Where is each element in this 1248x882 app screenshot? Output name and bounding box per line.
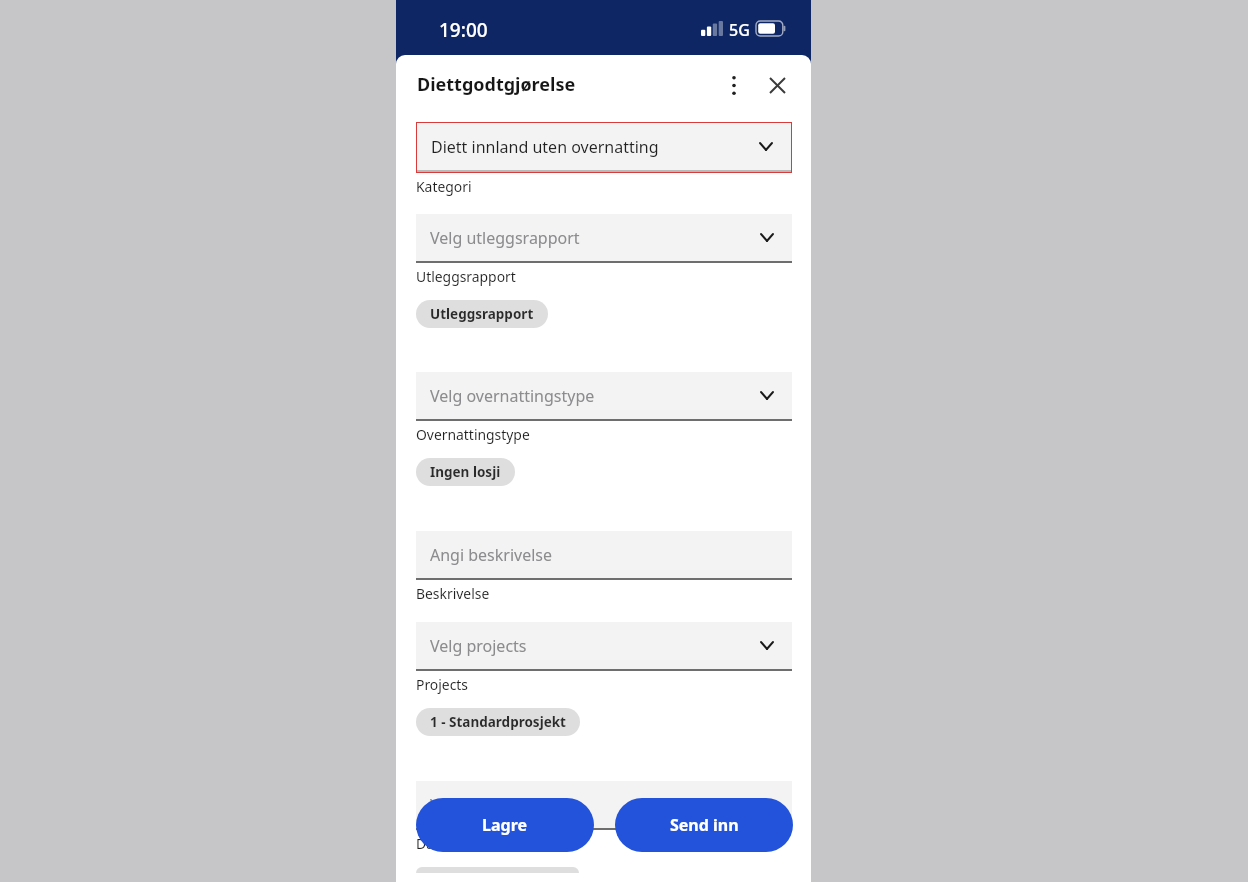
button[interactable]: Lagre <box>416 798 594 852</box>
button[interactable]: Velg utleggsrapport <box>416 214 792 263</box>
staticText: Utleggsrapport <box>416 267 516 286</box>
staticText: Ingen losji <box>430 463 501 481</box>
button[interactable]: Angi beskrivelse <box>416 531 792 580</box>
staticText: Beskrivelse <box>416 584 490 603</box>
button[interactable]: Utleggsrapport <box>416 300 548 328</box>
staticText: Angi beskrivelse <box>430 544 553 566</box>
button[interactable]: More options <box>714 65 754 105</box>
staticText: Utleggsrapport <box>430 305 534 323</box>
staticText: Velg dato <box>430 794 501 816</box>
button[interactable]: Diett innland uten overnatting <box>417 123 791 172</box>
staticText: Kategori <box>416 177 472 196</box>
staticText: Velg projects <box>430 635 527 657</box>
button[interactable]: Velg projects <box>416 622 792 671</box>
staticText: Projects <box>416 675 469 694</box>
staticText: Lagre <box>482 814 528 836</box>
button[interactable]: Dato chip <box>416 867 579 873</box>
button[interactable]: 1 - Standardprosjekt <box>416 708 580 736</box>
staticText: Velg overnattingstype <box>430 385 595 407</box>
button[interactable]: Velg overnattingstype <box>416 372 792 421</box>
staticText: 5G <box>729 19 750 41</box>
staticText: 1 - Standardprosjekt <box>430 713 566 731</box>
button[interactable]: Velg dato <box>416 781 792 830</box>
button[interactable]: Send inn <box>615 798 793 852</box>
staticText: Overnattingstype <box>416 425 530 444</box>
staticText: Diettgodtgjørelse <box>417 72 576 97</box>
button[interactable]: Ingen losji <box>416 458 515 486</box>
staticText: Send inn <box>670 814 739 836</box>
button[interactable]: Close <box>757 65 797 105</box>
staticText: Velg utleggsrapport <box>430 227 580 249</box>
staticText: Diett innland uten overnatting <box>431 136 659 158</box>
staticText: 19:00 <box>439 17 488 43</box>
staticText: Dato <box>416 834 448 853</box>
